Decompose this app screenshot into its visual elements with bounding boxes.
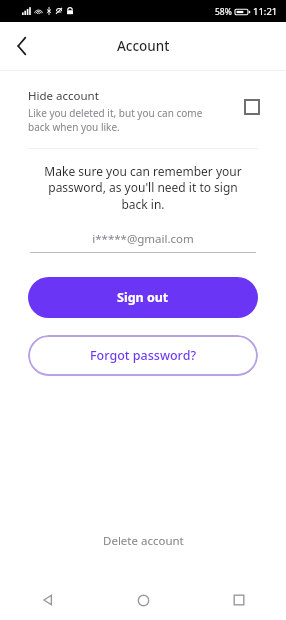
button[interactable]: Back xyxy=(0,580,96,620)
staticText: 11:21 xyxy=(253,5,278,18)
staticText: Forgot password? xyxy=(90,347,196,364)
button[interactable]: Delete account xyxy=(93,528,194,554)
staticText: Hide account xyxy=(28,88,99,104)
button[interactable]: Sign out xyxy=(28,277,258,318)
staticText: i*****@gmail.com xyxy=(30,231,256,247)
button[interactable]: i*****@gmail.com xyxy=(30,231,256,253)
button[interactable]: Recents xyxy=(191,580,286,620)
staticText: Account xyxy=(117,37,170,55)
staticText: Delete account xyxy=(103,533,184,549)
staticText: 58% xyxy=(215,6,232,18)
staticText: Sign out xyxy=(117,289,169,306)
button[interactable]: Back xyxy=(6,30,38,62)
button[interactable]: Hide account xyxy=(0,71,286,148)
button[interactable]: Hide account checkbox xyxy=(240,95,264,119)
button[interactable]: Home xyxy=(96,580,191,620)
staticText: Make sure you can remember your password… xyxy=(20,163,266,213)
button[interactable]: Forgot password? xyxy=(28,335,258,376)
staticText: Like you deleted it, but you can come ba… xyxy=(28,106,203,134)
